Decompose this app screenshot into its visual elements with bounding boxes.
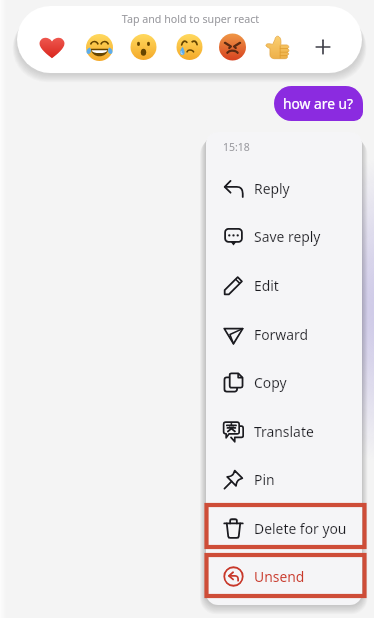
- button[interactable]: Copy: [206, 358, 362, 406]
- staticText: Delete for you: [254, 519, 347, 538]
- button[interactable]: Delete for you: [206, 504, 362, 552]
- button[interactable]: how are u?: [274, 86, 363, 121]
- button[interactable]: Like: [258, 28, 296, 66]
- button[interactable]: More reactions: [304, 28, 342, 66]
- button[interactable]: Haha: [80, 28, 118, 66]
- button[interactable]: Love: [33, 28, 71, 66]
- button[interactable]: Translate: [206, 407, 362, 455]
- staticText: Unsend: [254, 567, 305, 586]
- button[interactable]: Unsend: [206, 552, 362, 600]
- staticText: Pin: [254, 470, 275, 489]
- staticText: Edit: [254, 276, 279, 295]
- button[interactable]: Save reply: [206, 212, 362, 260]
- staticText: Save reply: [254, 227, 321, 246]
- button[interactable]: Pin: [206, 455, 362, 503]
- button[interactable]: Forward: [206, 310, 362, 358]
- button[interactable]: Sad: [170, 28, 208, 66]
- staticText: Tap and hold to super react: [18, 12, 362, 27]
- staticText: Forward: [254, 325, 309, 344]
- button[interactable]: Angry: [213, 28, 251, 66]
- button[interactable]: Edit: [206, 261, 362, 309]
- staticText: Copy: [254, 373, 287, 392]
- staticText: Reply: [254, 179, 290, 198]
- staticText: how are u?: [283, 94, 354, 113]
- staticText: 15:18: [223, 140, 250, 154]
- button[interactable]: Reply: [206, 164, 362, 212]
- button[interactable]: Wow: [124, 28, 162, 66]
- staticText: Translate: [254, 422, 314, 441]
